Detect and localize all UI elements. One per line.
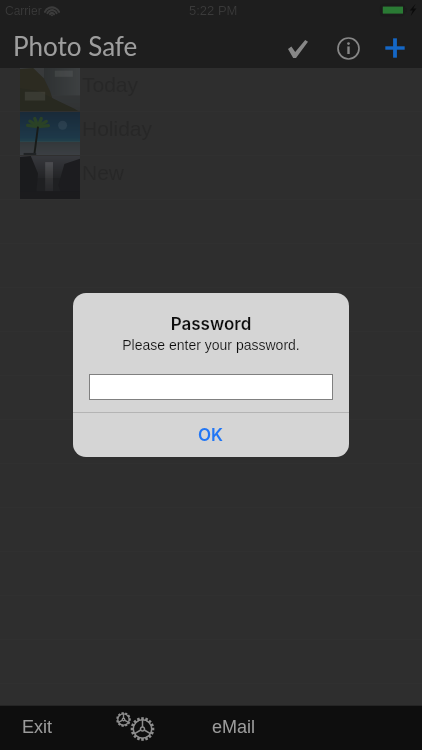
button[interactable]: Add: [373, 26, 417, 70]
staticText: Photo Safe: [13, 30, 138, 61]
button[interactable]: Select: [276, 27, 320, 71]
staticText: 5:22 PM: [189, 3, 238, 18]
button[interactable]: Info: [326, 26, 370, 70]
button[interactable]: OK: [73, 413, 349, 457]
button[interactable]: Today: [0, 68, 422, 112]
staticText: Please enter your password.: [73, 337, 349, 353]
staticText: eMail: [212, 717, 256, 737]
button[interactable]: Settings: [95, 705, 165, 750]
button[interactable]: Holiday: [0, 112, 422, 156]
staticText: OK: [198, 425, 224, 446]
button[interactable]: New: [0, 156, 422, 200]
staticText: Exit: [22, 717, 53, 737]
button[interactable]: eMail: [199, 705, 269, 750]
staticText: Carrier: [5, 4, 42, 17]
staticText: Password: [73, 314, 349, 335]
button[interactable]: Exit: [2, 705, 72, 750]
